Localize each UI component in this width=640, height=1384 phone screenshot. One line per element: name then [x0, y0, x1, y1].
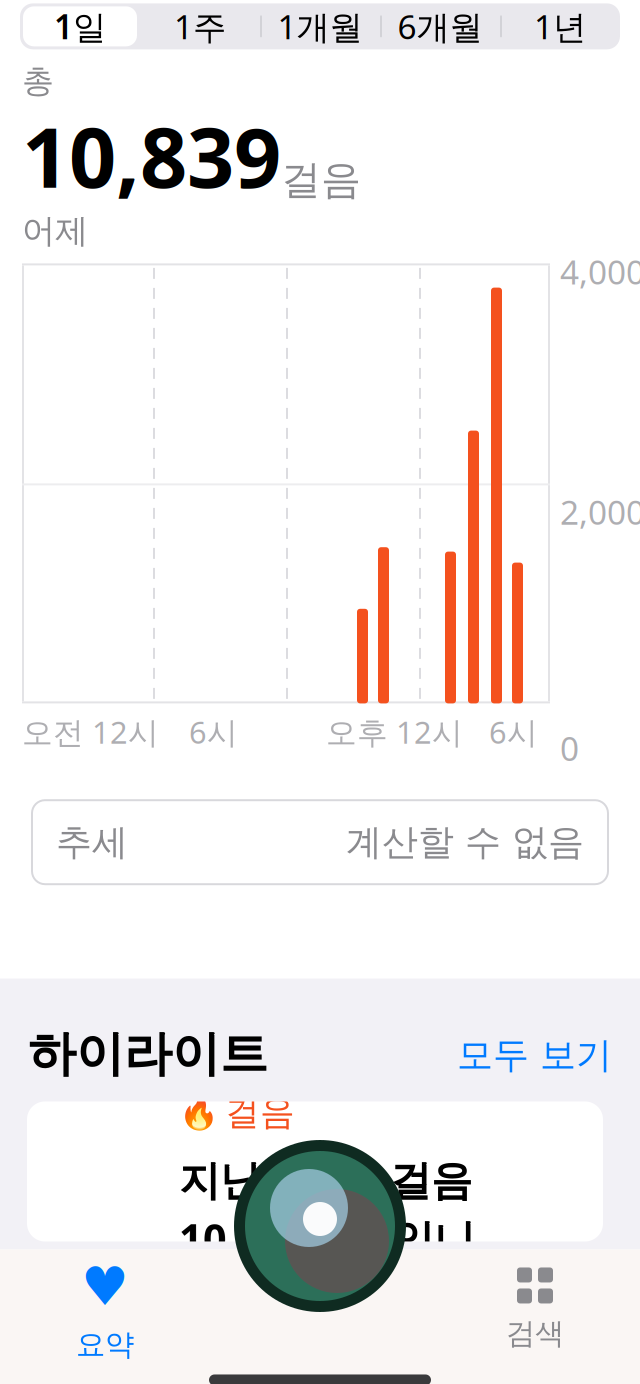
staticText: ➤	[115, 4, 132, 27]
button[interactable]: 1년	[500, 3, 620, 49]
button[interactable]: ❮	[3, 56, 161, 125]
staticText: 추세	[56, 820, 128, 864]
button[interactable]: 1주	[140, 3, 260, 49]
staticText: 오후 12시	[326, 711, 463, 752]
staticText: 10,839	[22, 101, 281, 210]
staticText: 하이라이트	[28, 1024, 268, 1083]
staticText: 🔥	[179, 1094, 219, 1131]
staticText: 계산할 수 없음	[346, 820, 584, 864]
staticText: 요약	[76, 1327, 134, 1363]
button[interactable]: ♥	[25, 1261, 185, 1357]
button[interactable]: 🔥	[0, 1101, 603, 1241]
staticText: 모두 보기	[457, 1033, 612, 1077]
staticText: 걸음	[225, 1091, 295, 1134]
button[interactable]: 추세	[0, 800, 640, 884]
staticText: 7:23	[29, 0, 109, 42]
staticText: LTE	[496, 0, 549, 37]
staticText: 1주	[174, 4, 226, 48]
staticText: 1개월	[277, 4, 362, 48]
staticText: 오전 12시	[22, 711, 159, 752]
button[interactable]: 6개월	[380, 3, 500, 49]
staticText: 1년	[534, 4, 586, 48]
staticText: ♥	[81, 1256, 129, 1317]
button[interactable]: 검색	[455, 1261, 615, 1357]
staticText: 2,000	[560, 490, 640, 534]
staticText: 걸음	[281, 155, 361, 204]
button[interactable]: 1일	[20, 3, 140, 49]
staticText: 6시	[489, 711, 538, 752]
staticText: 총	[22, 61, 54, 101]
staticText: 100	[562, 0, 604, 32]
staticText: 어제	[22, 210, 88, 251]
staticText: 검색	[506, 1315, 564, 1351]
staticText: 6개월	[397, 4, 482, 48]
staticText: 10,061걸음입니	[179, 1211, 475, 1266]
staticText: ❮	[21, 68, 55, 113]
button[interactable]: 모두 보기	[457, 1027, 612, 1083]
staticText: 6시	[189, 711, 238, 752]
staticText: 지난 7일간 걸음	[179, 1152, 472, 1207]
staticText: 0	[560, 726, 579, 770]
staticText: 1일	[54, 4, 106, 48]
staticText: 4,000	[560, 249, 640, 294]
button[interactable]: 1개월	[260, 3, 380, 49]
